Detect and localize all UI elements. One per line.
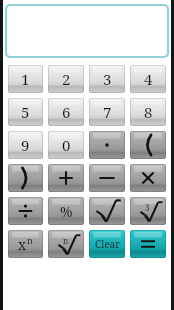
staticText: 3 bbox=[145, 202, 150, 213]
button[interactable]: Cube root bbox=[130, 197, 166, 225]
button[interactable]: nth root bbox=[48, 230, 84, 258]
button[interactable]: 5 bbox=[8, 98, 43, 126]
staticText: Clear bbox=[95, 237, 120, 251]
staticText: 3 bbox=[103, 69, 112, 89]
button[interactable]: Close parenthesis bbox=[8, 164, 43, 192]
button[interactable]: Percent bbox=[48, 197, 84, 225]
button[interactable] bbox=[6, 5, 168, 57]
staticText: % bbox=[60, 202, 73, 221]
staticText: 0 bbox=[62, 135, 71, 155]
staticText: 5 bbox=[21, 102, 30, 122]
button[interactable]: 7 bbox=[89, 98, 125, 126]
button[interactable]: 4 bbox=[130, 65, 166, 93]
button[interactable]: Clear bbox=[89, 230, 125, 258]
button[interactable]: Square root bbox=[89, 197, 125, 225]
button[interactable]: Divide bbox=[8, 197, 43, 225]
staticText: 7 bbox=[103, 102, 112, 122]
staticText: n bbox=[27, 234, 33, 247]
button[interactable]: Equals bbox=[130, 230, 166, 258]
button[interactable]: x to the power of n bbox=[8, 230, 43, 258]
button[interactable]: 0 bbox=[48, 131, 84, 159]
staticText: 6 bbox=[62, 102, 71, 122]
button[interactable]: 2 bbox=[48, 65, 84, 93]
staticText: 9 bbox=[21, 135, 30, 155]
button[interactable]: Multiply bbox=[130, 164, 166, 192]
button[interactable]: 6 bbox=[48, 98, 84, 126]
button[interactable]: 1 bbox=[8, 65, 43, 93]
button[interactable]: 9 bbox=[8, 131, 43, 159]
button[interactable]: 8 bbox=[130, 98, 166, 126]
button[interactable]: Minus bbox=[89, 164, 125, 192]
staticText: 4 bbox=[144, 69, 153, 89]
staticText: x bbox=[18, 235, 27, 254]
button[interactable]: 3 bbox=[89, 65, 125, 93]
button[interactable]: Decimal point bbox=[89, 131, 125, 159]
staticText: n bbox=[63, 235, 69, 246]
staticText: 8 bbox=[144, 102, 153, 122]
button[interactable]: Open parenthesis bbox=[130, 131, 166, 159]
button[interactable]: Plus bbox=[48, 164, 84, 192]
staticText: 2 bbox=[62, 69, 71, 89]
staticText: 1 bbox=[21, 69, 30, 89]
